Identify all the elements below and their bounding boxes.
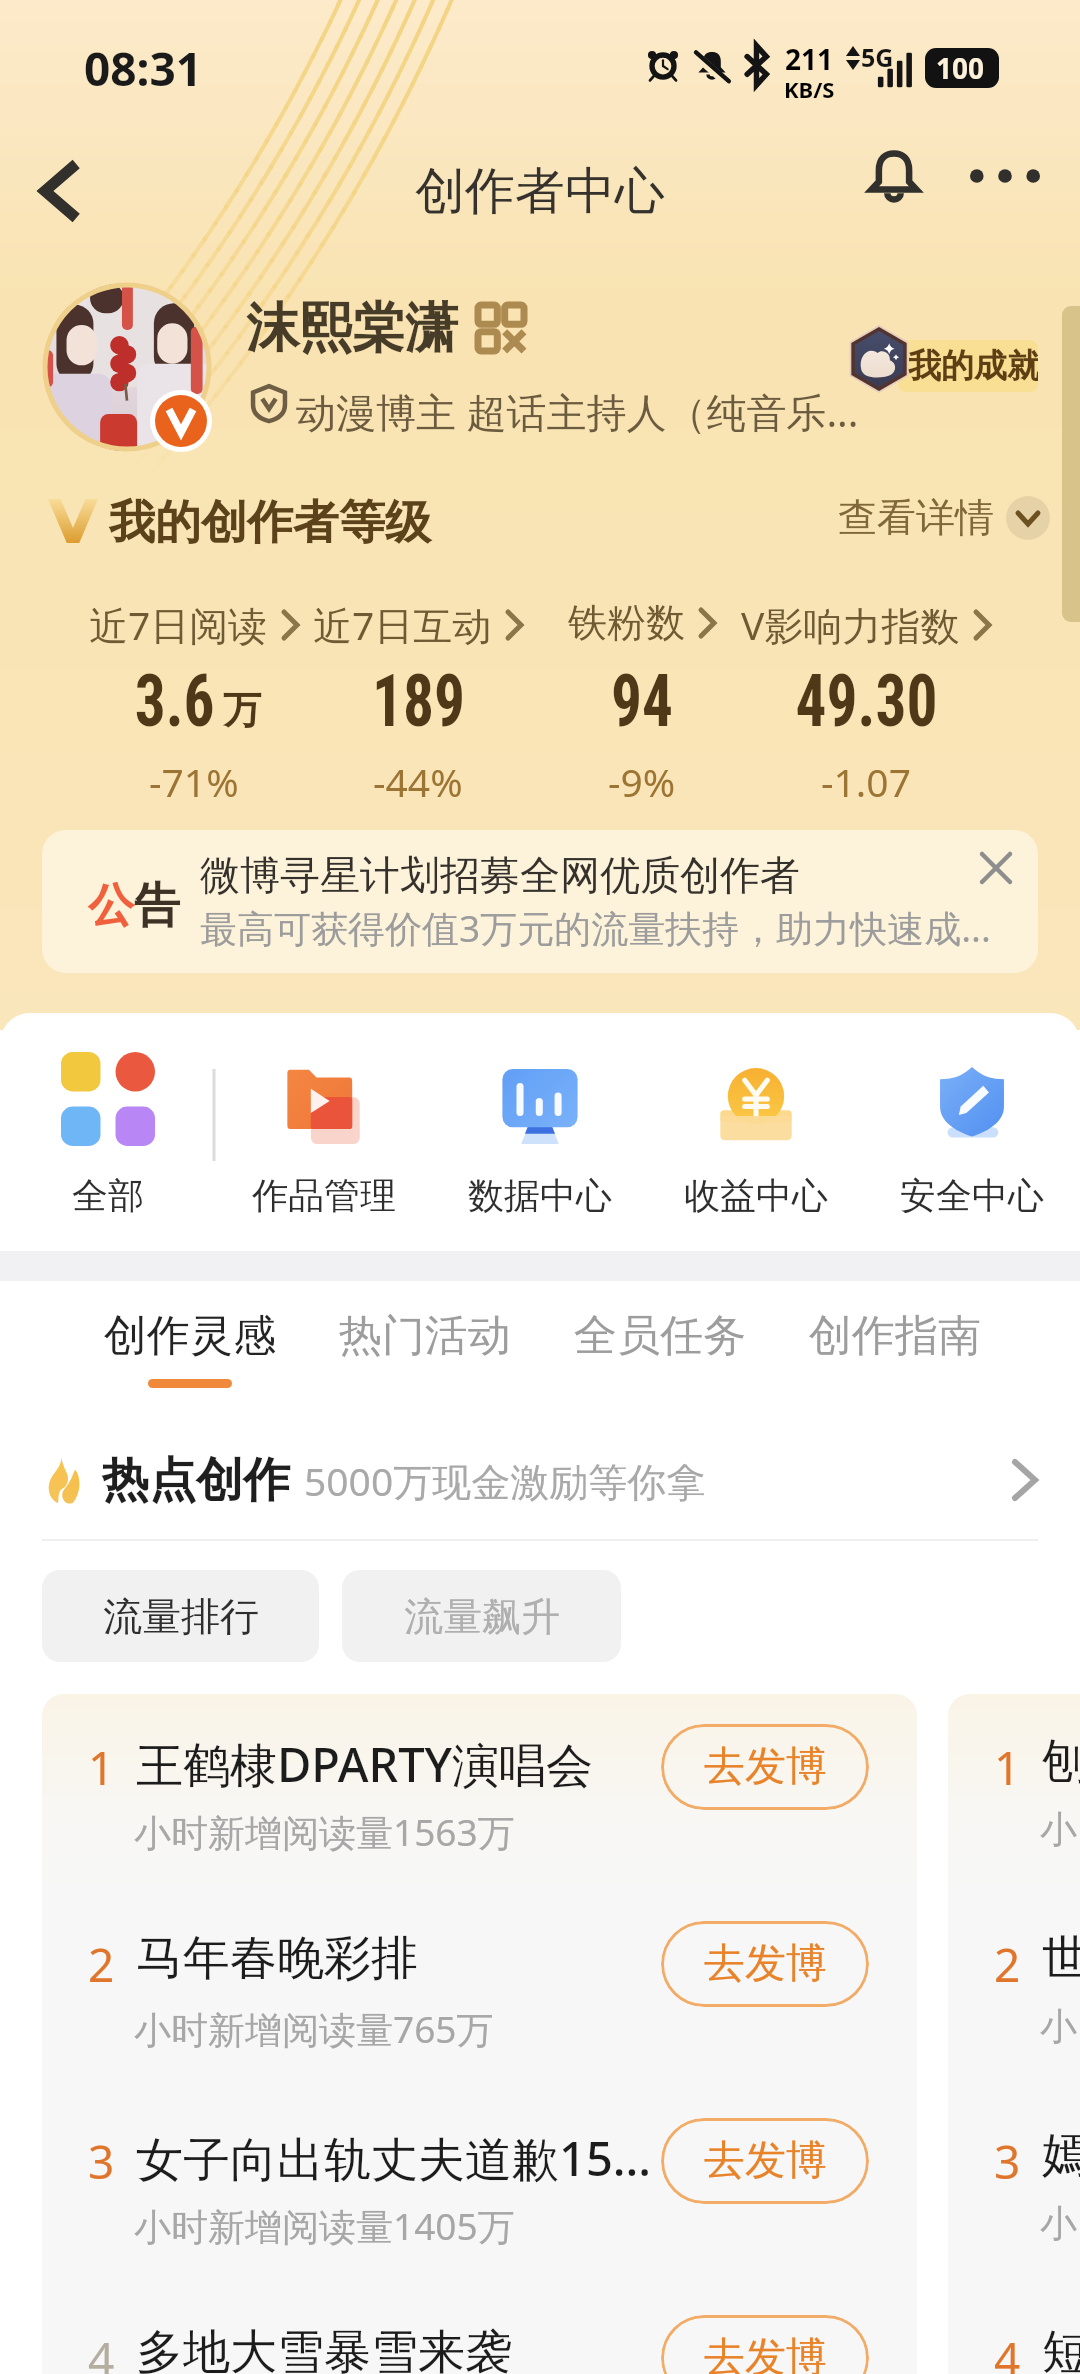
button[interactable]: 数据中心 [432, 1013, 648, 1251]
staticText: 查看详情 [838, 493, 994, 542]
button[interactable]: 3 [948, 2088, 1080, 2285]
staticText: 小日 [1040, 1806, 1080, 1853]
staticText: 4 [994, 2327, 1021, 2374]
staticText: 流量排行 [103, 1592, 259, 1641]
staticText: 08:31 [84, 37, 203, 100]
button[interactable]: 作品管理 [216, 1013, 432, 1251]
staticText: 去发博 [704, 1741, 827, 1793]
button[interactable]: 创作指南 [809, 1309, 1044, 1388]
button[interactable]: 去发博 [661, 2118, 869, 2204]
button[interactable]: 3 [42, 2088, 917, 2285]
staticText: 马年春晚彩排 [136, 1929, 696, 1988]
staticText: 女子向出轨丈夫道歉15... [136, 2126, 696, 2190]
button[interactable]: Side panel [1062, 306, 1080, 622]
staticText: 嫣 [1042, 2126, 1080, 2185]
button[interactable]: 近7日互动 [306, 592, 530, 812]
staticText: -9% [608, 755, 676, 808]
staticText: 小时新增阅读量1405万 [134, 2200, 515, 2251]
button[interactable]: 去发博 [661, 1921, 869, 2007]
button[interactable]: 去发博 [661, 1724, 869, 1810]
staticText: 小日 [1040, 2200, 1080, 2247]
staticText: 热门活动 [339, 1309, 511, 1363]
button[interactable]: 2 [948, 1891, 1080, 2088]
button[interactable]: 全部 [0, 1013, 216, 1251]
staticText: -44% [373, 755, 463, 808]
staticText: 近7日互动 [313, 598, 492, 651]
staticText: 铁粉数 [568, 598, 685, 647]
button[interactable]: Back [16, 147, 104, 235]
staticText: 100 [936, 49, 985, 87]
staticText: 最高可获得价值3万元的流量扶持，助力快速成... [200, 902, 991, 953]
staticText: 沫熙棠潇 [246, 295, 458, 362]
button[interactable]: 流量飙升 [342, 1570, 621, 1662]
staticText: KB/S [784, 74, 835, 104]
staticText: 小时新增阅读量765万 [134, 2003, 494, 2054]
button[interactable]: 铁粉数 [530, 592, 754, 812]
button[interactable]: 4 [948, 2285, 1080, 2374]
staticText: 创作指南 [809, 1309, 981, 1363]
staticText: 告 [134, 877, 180, 935]
staticText: 1 [994, 1736, 1021, 1799]
button[interactable]: 热门活动 [339, 1309, 574, 1388]
button[interactable]: 查看详情 [838, 493, 1050, 542]
button[interactable]: Profile avatar [43, 283, 211, 451]
staticText: 公 [88, 877, 134, 935]
staticText: 小日 [1040, 2003, 1080, 2050]
button[interactable]: More options [961, 132, 1049, 220]
button[interactable]: 收益中心 [648, 1013, 864, 1251]
staticText: 去发博 [704, 2332, 827, 2374]
button[interactable]: 1 [42, 1694, 917, 1891]
staticText: 王鹤棣DPARTY演唱会 [136, 1732, 696, 1796]
button[interactable]: 创作灵感 [104, 1309, 339, 1388]
button[interactable]: My achievements [845, 325, 913, 393]
staticText: 动漫博主 超话主持人（纯音乐... [296, 384, 859, 439]
button[interactable]: Notifications [850, 132, 938, 220]
button[interactable]: 去发博 [661, 2315, 869, 2374]
button[interactable]: 4 [42, 2285, 917, 2374]
button[interactable]: Close announcement [968, 840, 1024, 896]
staticText: 3 [994, 2130, 1021, 2193]
staticText: 创作者中心 [415, 160, 665, 223]
staticText: 热点创作 [102, 1451, 290, 1510]
staticText: -71% [149, 755, 239, 808]
staticText: 211 [785, 40, 834, 78]
staticText: 世 [1042, 1929, 1080, 1988]
staticText: 1 [88, 1736, 115, 1799]
button[interactable]: 我的成就 [898, 340, 1038, 392]
staticText: 近7日阅读 [89, 598, 268, 651]
staticText: 小时新增阅读量1563万 [134, 1806, 515, 1857]
button[interactable]: V影响力指数 [754, 592, 978, 812]
button[interactable]: 近7日阅读 [82, 592, 306, 812]
button[interactable]: 安全中心 [864, 1013, 1080, 1251]
staticText: 189 [372, 658, 465, 744]
staticText: 作品管理 [252, 1173, 396, 1218]
button[interactable]: 流量排行 [42, 1570, 319, 1662]
staticText: 全员任务 [574, 1309, 746, 1363]
staticText: 创作灵感 [104, 1309, 276, 1363]
staticText: 3 [88, 2130, 115, 2193]
staticText: 安全中心 [900, 1173, 1044, 1218]
staticText: 5000万现金激励等你拿 [304, 1454, 706, 1507]
staticText: 微博寻星计划招募全网优质创作者 [200, 850, 800, 900]
button[interactable]: 全员任务 [574, 1309, 809, 1388]
staticText: 多地大雪暴雪来袭 [136, 2323, 696, 2374]
staticText: 94 [611, 658, 673, 744]
button[interactable]: 1 [948, 1694, 1080, 1891]
staticText: 万 [223, 686, 261, 734]
staticText: 短 [1042, 2323, 1080, 2374]
staticText: 去发博 [704, 1938, 827, 1990]
staticText: 去发博 [704, 2135, 827, 2187]
button[interactable]: 2 [42, 1891, 917, 2088]
staticText: -1.07 [821, 755, 911, 808]
staticText: 数据中心 [468, 1173, 612, 1218]
staticText: 流量飙升 [404, 1592, 560, 1641]
staticText: 全部 [72, 1173, 144, 1218]
staticText: 收益中心 [684, 1173, 828, 1218]
staticText: 4 [88, 2327, 115, 2374]
button[interactable]: 热点创作 [0, 1421, 1080, 1539]
staticText: 刨 [1042, 1732, 1080, 1791]
button[interactable]: 公 [42, 830, 1038, 973]
staticText: 5G [861, 40, 894, 74]
staticText: V影响力指数 [741, 598, 960, 651]
staticText: 3.6 [135, 658, 215, 744]
